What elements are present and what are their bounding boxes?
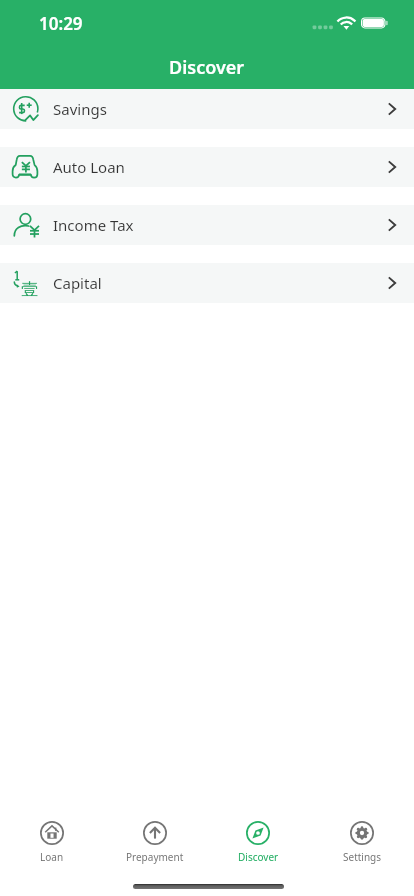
staticText: Savings (53, 99, 107, 119)
other: Discover (246, 821, 270, 845)
button[interactable]: Income Tax (0, 205, 414, 245)
button[interactable]: Prepayment (103, 812, 206, 874)
staticText: Loan (40, 850, 64, 864)
button[interactable]: Discover (206, 812, 310, 874)
staticText: Income Tax (53, 215, 134, 235)
button[interactable]: 壹 (0, 263, 414, 303)
button[interactable]: Auto Loan (0, 147, 414, 187)
button[interactable]: Savings (0, 89, 414, 129)
staticText: Discover (238, 850, 279, 864)
other: Loan (40, 821, 64, 845)
button[interactable]: Loan (0, 812, 103, 874)
staticText: 10:29 (39, 12, 83, 35)
staticText: Discover (169, 55, 245, 80)
staticText: 壹 (21, 279, 38, 300)
other: Settings (350, 821, 374, 845)
staticText: Settings (343, 850, 382, 864)
staticText: Capital (53, 273, 102, 293)
other: Prepayment (143, 821, 167, 845)
staticText: Auto Loan (53, 157, 125, 177)
staticText: Prepayment (126, 850, 184, 864)
button[interactable]: Settings (310, 812, 414, 874)
